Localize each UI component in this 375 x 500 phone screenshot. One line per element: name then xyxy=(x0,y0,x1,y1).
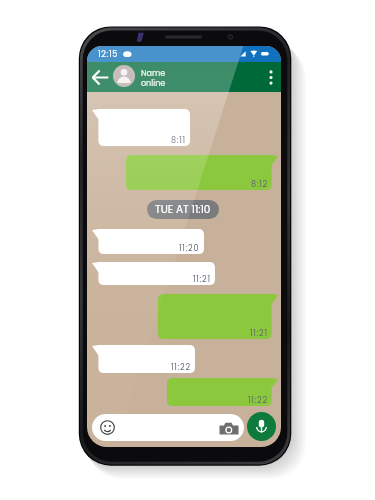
staticText: 11:21 xyxy=(193,274,211,285)
button[interactable]: 11:22 xyxy=(92,345,195,373)
staticText: 8:11 xyxy=(171,135,186,146)
staticText: 12:15 xyxy=(98,49,118,60)
button[interactable]: TUE AT 11:10 xyxy=(147,200,219,219)
button[interactable]: Record voice message xyxy=(247,412,276,441)
staticText: 8:12 xyxy=(251,179,268,190)
button[interactable]: 11:22 xyxy=(167,378,278,406)
staticText: 11:21 xyxy=(250,328,268,339)
staticText: 11:22 xyxy=(248,395,268,406)
staticText: TUE AT 11:10 xyxy=(155,202,211,217)
staticText: online xyxy=(141,78,166,89)
button[interactable]: 11:20 xyxy=(92,229,204,254)
button[interactable]: 11:21 xyxy=(158,294,278,339)
button[interactable]: 11:21 xyxy=(92,262,215,285)
button[interactable]: Camera xyxy=(92,414,244,441)
button[interactable]: Camera xyxy=(218,420,240,436)
button[interactable]: More options xyxy=(265,62,277,92)
button[interactable]: Back xyxy=(88,62,111,92)
staticText: 11:20 xyxy=(179,243,200,254)
staticText: Name xyxy=(141,68,166,79)
button[interactable]: 8:12 xyxy=(126,155,278,190)
staticText: 11:22 xyxy=(171,362,191,373)
button[interactable]: 8:11 xyxy=(92,109,190,146)
